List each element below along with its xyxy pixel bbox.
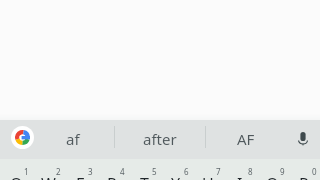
staticText: after — [143, 129, 177, 149]
button[interactable]: Google search — [4, 120, 40, 159]
button[interactable]: 3 — [64, 159, 96, 180]
staticText: E — [76, 173, 85, 180]
staticText: af — [66, 129, 80, 149]
button[interactable]: 1 — [0, 159, 32, 180]
button[interactable]: 8 — [224, 159, 256, 180]
button[interactable]: 4 — [96, 159, 128, 180]
staticText: W — [41, 173, 56, 180]
staticText: U — [202, 173, 214, 180]
button[interactable]: 5 — [128, 159, 160, 180]
staticText: 3 — [88, 166, 93, 177]
staticText: P — [299, 173, 309, 180]
staticText: AF — [237, 129, 255, 149]
staticText: T — [140, 173, 149, 180]
staticText: 5 — [152, 166, 157, 177]
staticText: 4 — [120, 166, 125, 177]
button[interactable]: 9 — [256, 159, 288, 180]
button[interactable]: AF — [206, 120, 286, 159]
staticText: O — [266, 173, 279, 180]
button[interactable]: after — [115, 120, 204, 159]
button[interactable]: af — [32, 120, 114, 159]
staticText: 2 — [56, 166, 61, 177]
staticText: 8 — [248, 166, 253, 177]
button[interactable]: 2 — [32, 159, 64, 180]
staticText: I — [237, 173, 243, 180]
staticText: Y — [171, 173, 181, 180]
staticText: R — [107, 173, 117, 180]
staticText: 1 — [24, 166, 29, 177]
staticText: Q — [10, 173, 23, 180]
button[interactable]: 0 — [288, 159, 320, 180]
staticText: 6 — [184, 166, 189, 177]
staticText: 9 — [280, 166, 285, 177]
button[interactable]: 7 — [192, 159, 224, 180]
staticText: 7 — [216, 166, 221, 177]
button[interactable]: Voice input — [286, 120, 320, 159]
staticText: 0 — [312, 166, 317, 177]
button[interactable]: 6 — [160, 159, 192, 180]
